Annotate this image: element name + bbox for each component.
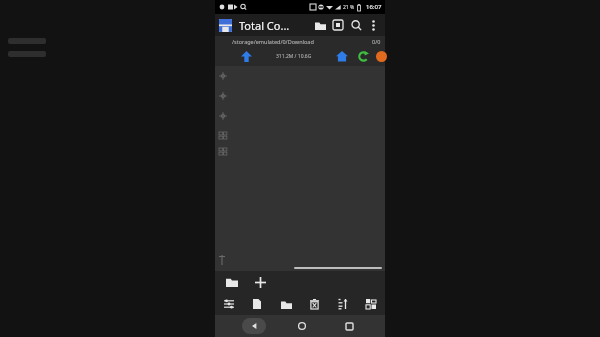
button[interactable]: Pane grid tool (216, 129, 229, 142)
staticText: 311.2M / 10.6G (276, 53, 312, 60)
staticText: /storage/emulated/0/Download (232, 38, 314, 45)
button[interactable]: More options (365, 17, 381, 33)
button[interactable]: New folder (223, 273, 241, 291)
button[interactable]: Search (347, 16, 365, 34)
button[interactable]: Up one level (237, 47, 255, 65)
staticText: 16:07 (366, 3, 382, 11)
button[interactable]: Home (333, 47, 351, 65)
button[interactable]: Delete (306, 296, 322, 312)
button[interactable]: Back (242, 318, 266, 334)
staticText: Total Co... (239, 18, 290, 33)
button[interactable]: Pane tool (216, 109, 229, 122)
button[interactable]: Folder options (278, 296, 294, 312)
button[interactable]: App icon (219, 19, 232, 32)
button[interactable]: Pane tool (216, 69, 229, 82)
button[interactable]: Pane tool (216, 89, 229, 102)
button[interactable]: Storage (329, 16, 347, 34)
button[interactable]: More (374, 49, 388, 63)
button[interactable]: Select (363, 296, 379, 312)
button[interactable]: Pane grid tool (216, 145, 229, 158)
button[interactable]: Add (251, 273, 269, 291)
button[interactable]: Sort (335, 296, 351, 312)
button[interactable]: New file (249, 296, 265, 312)
button[interactable]: Filter (221, 296, 237, 312)
staticText: 0/0 (372, 38, 381, 45)
button[interactable]: Refresh (355, 48, 371, 64)
staticText: 21 % (343, 4, 355, 11)
button[interactable]: Folder (311, 16, 329, 34)
button[interactable]: Recents (339, 316, 359, 336)
button[interactable]: Home (292, 316, 312, 336)
